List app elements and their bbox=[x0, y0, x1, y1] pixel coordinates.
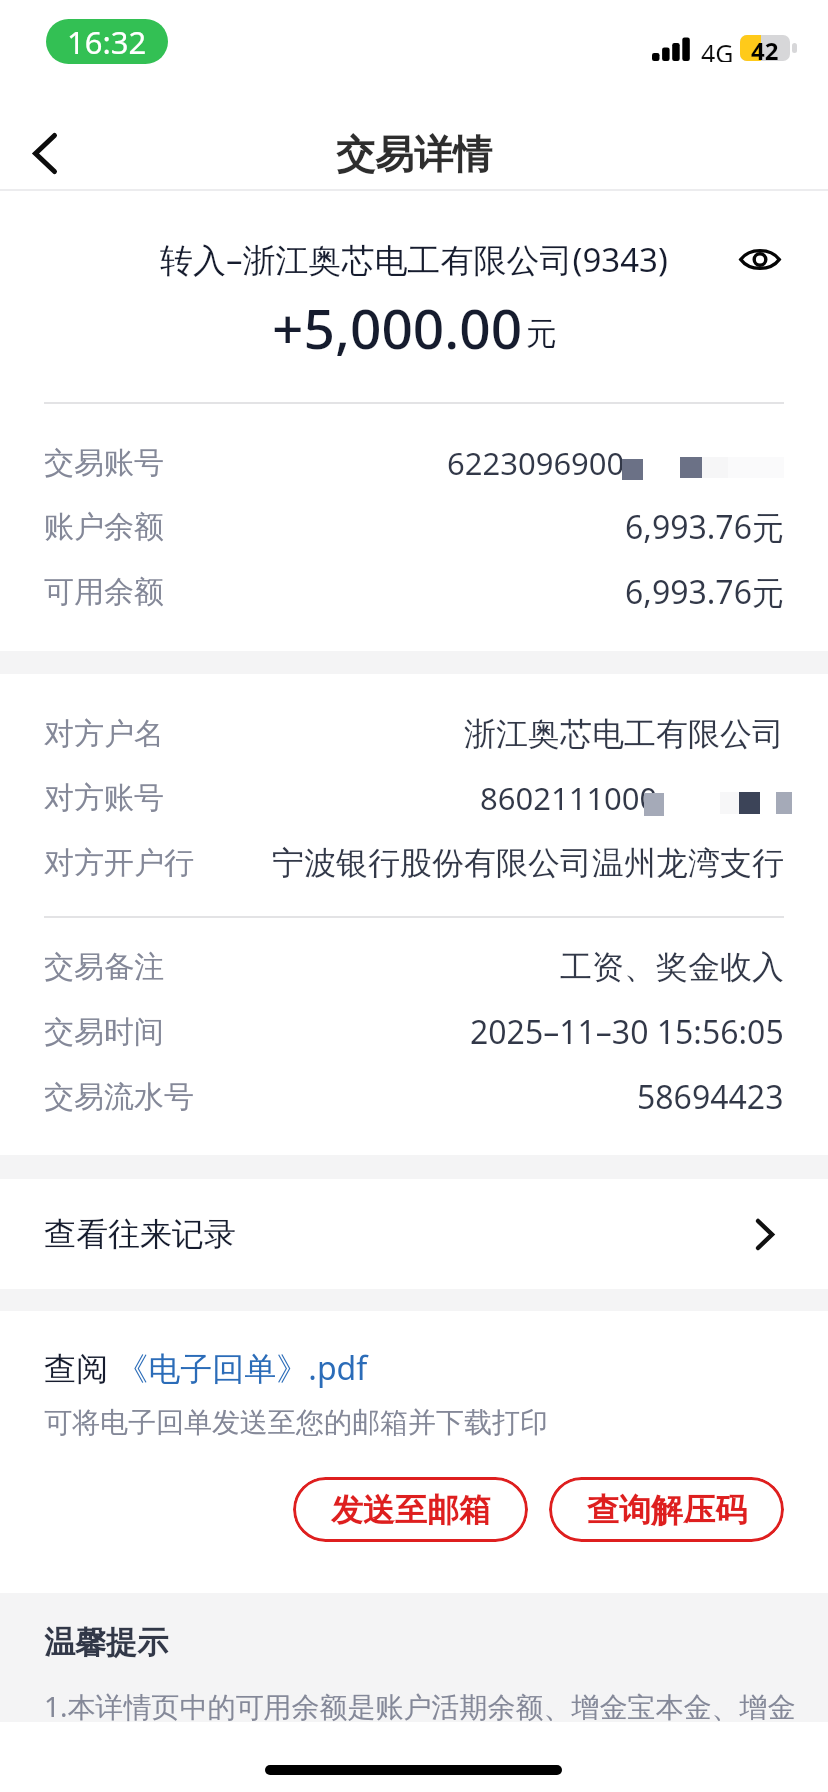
staticText: 对方账号 bbox=[44, 779, 164, 817]
staticText: 可用余额 bbox=[44, 573, 164, 611]
staticText: 工资、奖金收入 bbox=[560, 947, 784, 987]
staticText: 浙江奥芯电工有限公司 bbox=[464, 714, 784, 754]
staticText: 1.本详情页中的可用余额是账户活期余额、增金宝本金、增金 bbox=[44, 1687, 796, 1725]
button[interactable]: 查阅 《电子回单》.pdf bbox=[44, 1346, 368, 1390]
staticText: 对方开户行 bbox=[44, 844, 194, 882]
staticText: 交易时间 bbox=[44, 1013, 164, 1051]
staticText: 6,993.76元 bbox=[625, 505, 784, 549]
button[interactable]: Toggle amount visibility bbox=[716, 223, 804, 295]
staticText: 6223096900 bbox=[447, 442, 625, 484]
staticText: 6,993.76元 bbox=[625, 570, 784, 614]
staticText: 元 bbox=[526, 314, 557, 353]
button[interactable]: Back bbox=[5, 113, 85, 193]
staticText: 16:32 bbox=[67, 21, 147, 63]
staticText: 42 bbox=[751, 34, 779, 60]
staticText: 4G bbox=[701, 36, 734, 62]
button[interactable]: 查询解压码 bbox=[549, 1477, 784, 1542]
staticText: 交易详情 bbox=[336, 130, 492, 179]
button[interactable]: 发送至邮箱 bbox=[293, 1477, 528, 1542]
staticText: 发送至邮箱 bbox=[331, 1490, 491, 1530]
staticText: 查看往来记录 bbox=[44, 1214, 236, 1254]
staticText: 2025–11–30 15:56:05 bbox=[470, 1010, 784, 1054]
staticText: 8602111000 bbox=[480, 777, 658, 819]
staticText: 可将电子回单发送至您的邮箱并下载打印 bbox=[44, 1405, 548, 1440]
staticText: 交易流水号 bbox=[44, 1078, 194, 1116]
staticText: 交易备注 bbox=[44, 948, 164, 986]
staticText: 查询解压码 bbox=[587, 1490, 747, 1530]
staticText: 查阅 《电子回单》.pdf bbox=[44, 1346, 368, 1390]
staticText: 58694423 bbox=[637, 1075, 784, 1119]
staticText: 账户余额 bbox=[44, 508, 164, 546]
staticText: +5,000.00 bbox=[272, 290, 523, 365]
button[interactable]: 查看往来记录 bbox=[0, 1179, 828, 1289]
staticText: 温馨提示 bbox=[44, 1623, 168, 1662]
staticText: 转入–浙江奥芯电工有限公司(9343) bbox=[160, 237, 668, 282]
staticText: 交易账号 bbox=[44, 444, 164, 482]
staticText: 对方户名 bbox=[44, 715, 164, 753]
staticText: 宁波银行股份有限公司温州龙湾支行 bbox=[272, 843, 784, 883]
